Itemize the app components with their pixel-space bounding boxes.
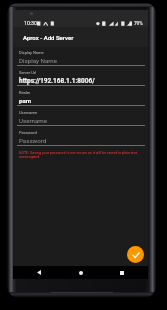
staticText: 79% (134, 21, 143, 26)
staticText: pam (19, 97, 32, 104)
staticText: Display Name (19, 57, 58, 64)
staticText: https://192.168.1.1:8006/ (19, 77, 95, 85)
staticText: 10:30 (24, 20, 37, 26)
staticText: Username (19, 110, 38, 115)
staticText: NOTE: Saving your password is not secure… (19, 151, 141, 159)
button[interactable]: Password (17, 127, 145, 147)
staticText: Password (19, 137, 47, 144)
button[interactable]: Realm (17, 87, 145, 107)
button[interactable]: Save server (127, 246, 144, 263)
button[interactable]: Home (66, 266, 96, 279)
button[interactable]: Username (17, 107, 145, 127)
button[interactable]: Back (24, 266, 54, 279)
button[interactable]: Recent apps (107, 266, 137, 279)
staticText: Realm (19, 90, 31, 95)
button[interactable]: Aprox - Add Server (13, 27, 148, 47)
button[interactable]: Display Name (17, 47, 145, 67)
staticText: Aprox - Add Server (23, 34, 74, 41)
staticText: Display Name (19, 50, 44, 55)
button[interactable]: Server Url (17, 67, 145, 87)
staticText: Password (19, 130, 37, 135)
staticText: Server Url (19, 70, 37, 75)
staticText: Username (19, 117, 48, 124)
